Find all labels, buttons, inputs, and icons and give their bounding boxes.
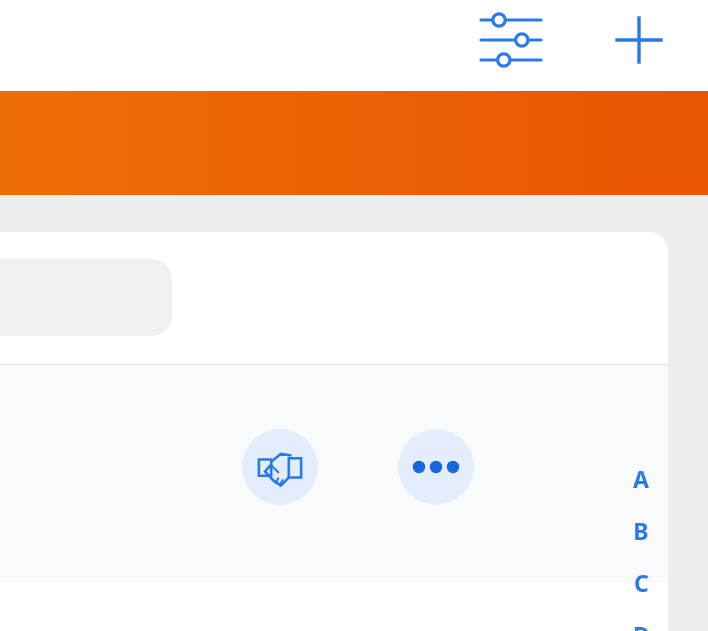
button[interactable]: Deals [242, 429, 318, 505]
button[interactable]: More options [398, 429, 474, 505]
button[interactable]: Promotion banner [0, 91, 708, 195]
staticText: D [633, 619, 650, 631]
button[interactable]: Add [607, 8, 671, 72]
staticText: A [633, 463, 649, 494]
button[interactable]: Filter [471, 8, 551, 72]
button[interactable]: Alphabet index [625, 452, 657, 631]
staticText: B [633, 515, 649, 546]
staticText: C [634, 567, 649, 598]
